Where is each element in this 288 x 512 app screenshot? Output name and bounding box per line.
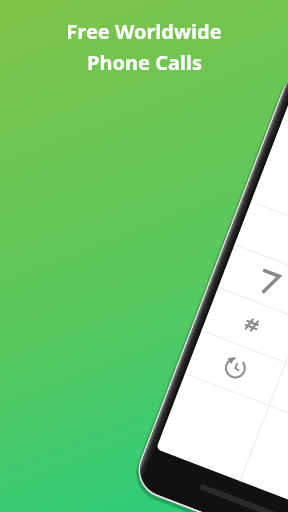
staticText: Phone Calls (87, 49, 202, 76)
staticText: Free Worldwide (66, 18, 222, 45)
other: Dial pad illustration (0, 0, 288, 512)
button[interactable]: Free Worldwide (20, 18, 268, 76)
